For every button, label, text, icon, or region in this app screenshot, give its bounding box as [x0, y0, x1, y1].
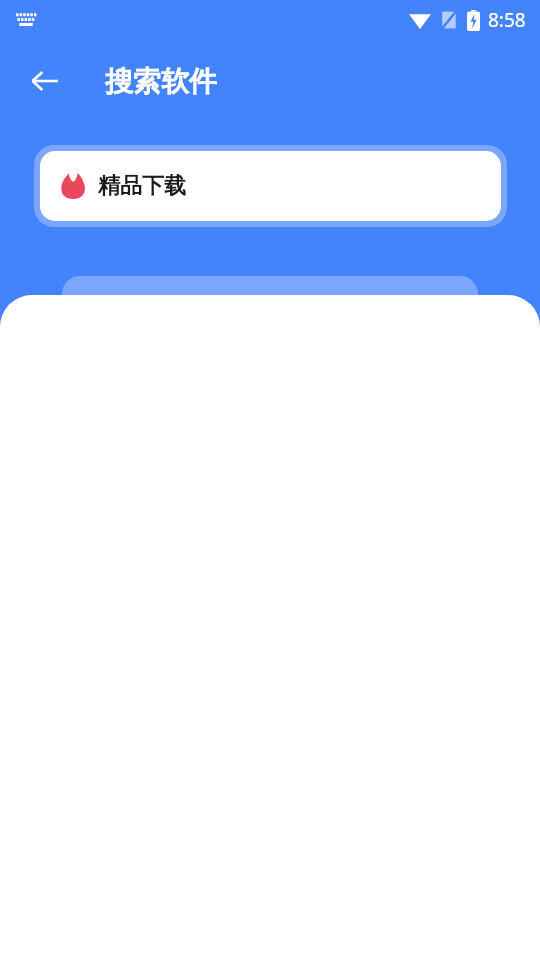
button[interactable]	[62, 276, 478, 366]
button[interactable]: 精品下载	[34, 145, 507, 227]
staticText: 精品下载	[98, 172, 186, 200]
staticText: 8:58	[488, 7, 526, 33]
button[interactable]: 返回	[22, 58, 68, 104]
staticText: 搜索软件	[105, 64, 217, 99]
